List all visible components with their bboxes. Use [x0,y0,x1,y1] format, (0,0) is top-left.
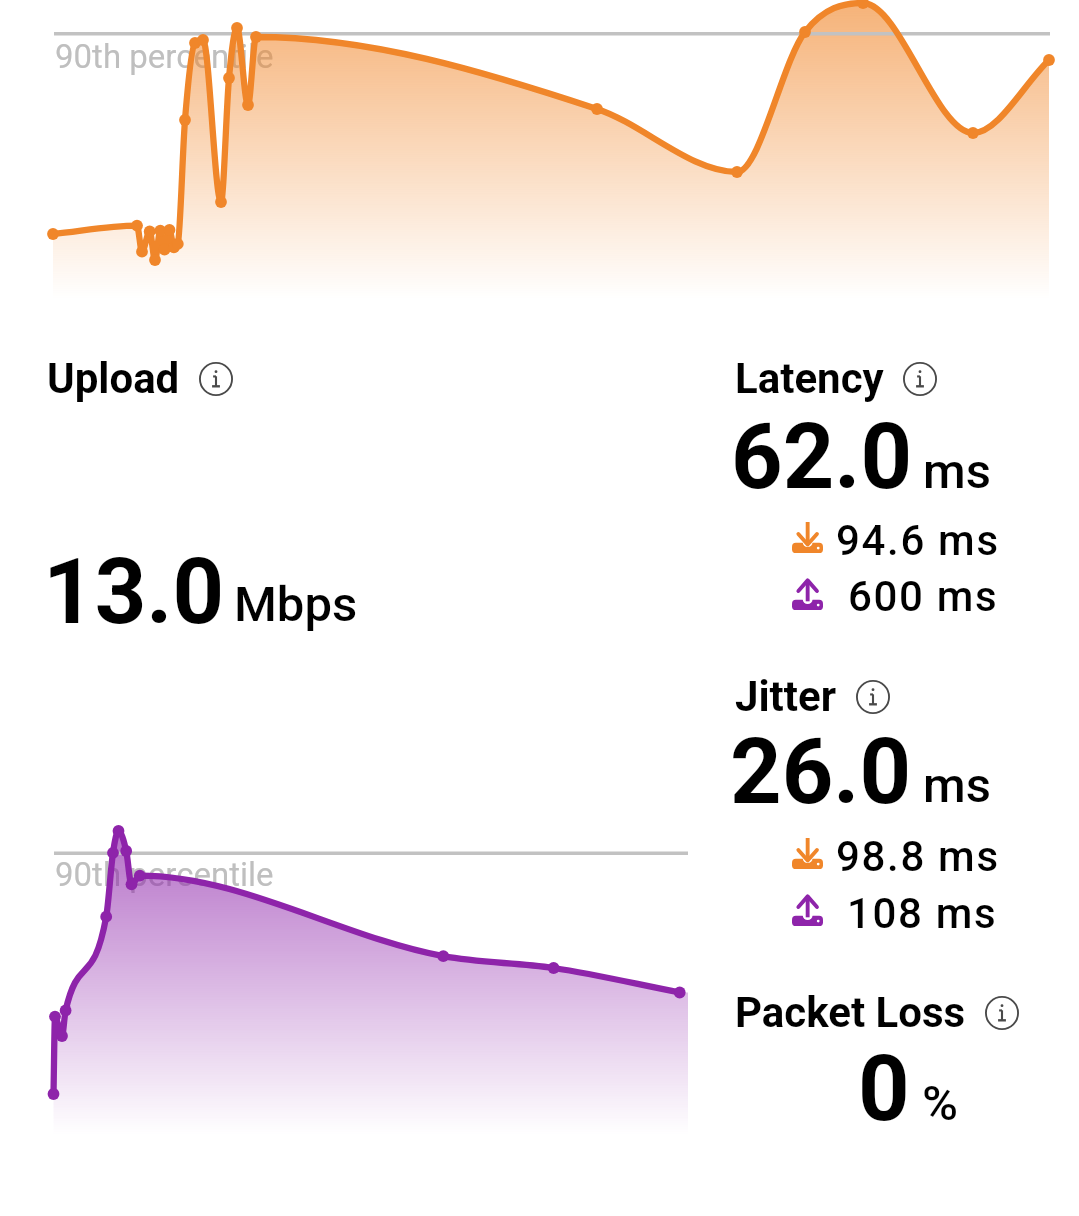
staticText: 94.6 ms [836,516,1000,565]
button[interactable]: Download [792,522,987,571]
staticText: 90th percentile [55,855,274,894]
button[interactable]: % [922,1075,959,1132]
button[interactable]: Upload [792,579,974,628]
staticText: Jitter [735,672,837,721]
button[interactable]: 62.0 [731,405,913,510]
button[interactable]: Latency [735,354,937,403]
button[interactable]: Upload [792,895,974,944]
button[interactable]: Download [792,838,987,887]
other: Download [792,838,823,869]
other: Upload [792,895,823,926]
staticText: 108 ms [847,889,998,938]
staticText: Upload [47,354,180,403]
button[interactable]: 26.0 [730,720,912,825]
button[interactable]: 0 [858,1037,910,1142]
button[interactable]: Upload [47,354,233,403]
other: Upload [792,579,823,610]
button[interactable]: Mbps [234,576,358,633]
button[interactable]: ms [923,443,991,500]
staticText: Latency [735,354,884,403]
staticText: Packet Loss [735,988,966,1037]
button[interactable]: 13.0 [43,540,225,645]
staticText: 90th percentile [55,37,274,76]
other: Download [792,522,823,553]
button[interactable]: ms [923,757,991,814]
button[interactable]: Jitter [735,672,890,721]
staticText: 98.8 ms [836,832,1000,881]
button[interactable]: Packet Loss [735,988,1019,1037]
staticText: 600 ms [848,572,999,621]
